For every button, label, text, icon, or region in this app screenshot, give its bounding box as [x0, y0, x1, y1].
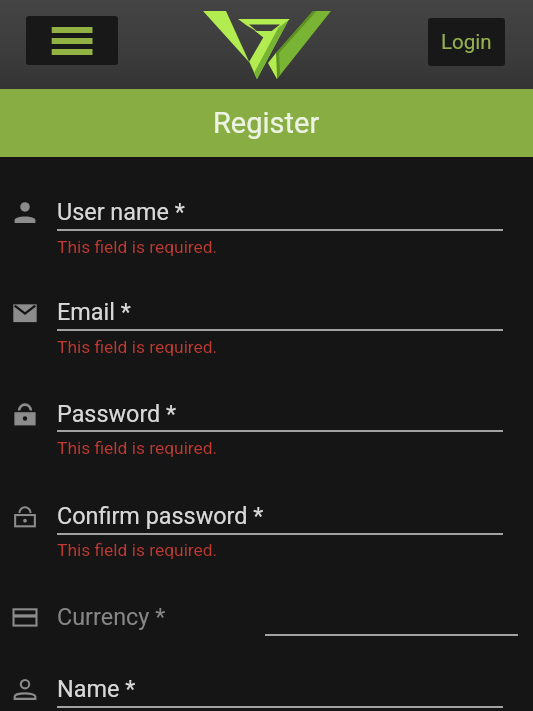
- staticText: This field is required.: [57, 337, 218, 357]
- staticText: This field is required.: [57, 540, 218, 560]
- button[interactable]: Name *: [0, 662, 533, 702]
- button[interactable]: Login: [428, 18, 505, 66]
- button[interactable]: Password *: [0, 387, 533, 463]
- staticText: This field is required.: [57, 438, 218, 458]
- button[interactable]: Logo: [201, 7, 331, 80]
- button[interactable]: Currency *: [0, 590, 533, 636]
- button[interactable]: User name *: [0, 185, 533, 261]
- button[interactable]: Confirm password *: [0, 489, 533, 565]
- staticText: User name *: [57, 198, 185, 225]
- staticText: Login: [441, 30, 492, 54]
- button[interactable]: Menu: [26, 16, 118, 65]
- staticText: Currency *: [57, 603, 166, 630]
- button[interactable]: Email *: [0, 285, 533, 361]
- staticText: Email *: [57, 298, 131, 325]
- staticText: Confirm password *: [57, 502, 264, 529]
- staticText: This field is required.: [57, 237, 218, 257]
- staticText: Password *: [57, 400, 177, 427]
- staticText: Register: [213, 106, 320, 140]
- staticText: Name *: [57, 675, 136, 702]
